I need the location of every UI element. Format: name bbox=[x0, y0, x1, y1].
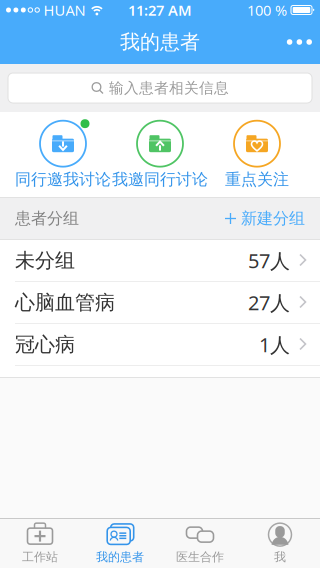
button[interactable]: 未分组 bbox=[0, 240, 320, 281]
staticText: 未分组 bbox=[15, 248, 75, 273]
button[interactable]: 同行邀我讨论 bbox=[14, 112, 111, 197]
staticText: 100 % bbox=[247, 0, 287, 20]
button[interactable]: 重点关注 bbox=[208, 112, 305, 197]
button[interactable]: 冠心病 bbox=[0, 324, 320, 365]
staticText: 我的患者 bbox=[96, 550, 144, 564]
staticText: 我 bbox=[274, 550, 286, 564]
staticText: 27人 bbox=[248, 289, 290, 316]
staticText: 冠心病 bbox=[15, 332, 75, 357]
staticText: HUAN bbox=[43, 0, 85, 20]
button[interactable]: 医生合作 bbox=[160, 519, 240, 568]
button[interactable]: 搜索 bbox=[8, 73, 312, 103]
staticText: 医生合作 bbox=[176, 550, 224, 564]
button[interactable]: 新建分组 bbox=[225, 198, 305, 239]
button[interactable]: 我 bbox=[240, 519, 320, 568]
staticText: 心脑血管病 bbox=[15, 290, 115, 315]
staticText: 患者分组 bbox=[15, 209, 79, 228]
staticText: 1人 bbox=[259, 331, 290, 358]
staticText: 57人 bbox=[248, 247, 290, 274]
button[interactable]: 更多 bbox=[287, 20, 320, 64]
staticText: 工作站 bbox=[22, 550, 58, 564]
staticText: 输入患者相关信息 bbox=[109, 79, 229, 97]
staticText: 我邀同行讨论 bbox=[112, 170, 208, 189]
staticText: 同行邀我讨论 bbox=[15, 170, 111, 189]
button[interactable]: 心脑血管病 bbox=[0, 282, 320, 323]
button[interactable]: 我邀同行讨论 bbox=[111, 112, 208, 197]
staticText: 我的患者 bbox=[120, 30, 200, 54]
staticText: 11:27 AM bbox=[128, 0, 192, 20]
button[interactable]: 工作站 bbox=[0, 519, 80, 568]
button[interactable]: 我的患者 bbox=[80, 519, 160, 568]
staticText: 新建分组 bbox=[241, 209, 305, 228]
staticText: 重点关注 bbox=[225, 170, 289, 189]
